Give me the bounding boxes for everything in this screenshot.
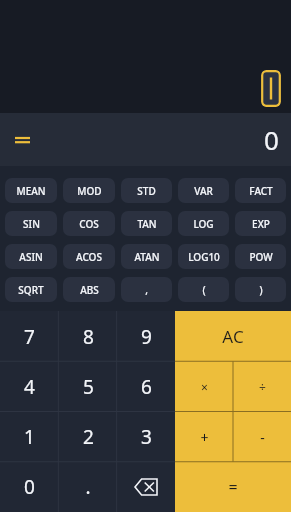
staticText: 8 bbox=[83, 324, 94, 350]
button[interactable]: . bbox=[59, 462, 117, 512]
button[interactable]: SQRT bbox=[5, 277, 57, 302]
staticText: LOG bbox=[193, 217, 214, 231]
staticText: MEAN bbox=[16, 184, 46, 198]
button[interactable]: LOG10 bbox=[178, 244, 229, 269]
staticText: × bbox=[201, 379, 208, 395]
staticText: EXP bbox=[252, 217, 270, 231]
button[interactable]: 4 bbox=[0, 362, 59, 412]
staticText: , bbox=[145, 283, 148, 297]
button[interactable]: TAN bbox=[121, 211, 172, 236]
staticText: 7 bbox=[24, 324, 35, 350]
button[interactable]: 5 bbox=[59, 362, 117, 412]
staticText: STD bbox=[137, 184, 156, 198]
staticText: . bbox=[85, 474, 91, 500]
button[interactable]: SIN bbox=[5, 211, 57, 236]
button[interactable]: FACT bbox=[235, 178, 286, 203]
staticText: MOD bbox=[77, 184, 102, 198]
staticText: ABS bbox=[80, 283, 99, 297]
button[interactable]: + bbox=[175, 412, 233, 462]
button[interactable]: 0 bbox=[0, 462, 59, 512]
staticText: 5 bbox=[83, 374, 94, 400]
staticText: ATAN bbox=[134, 250, 160, 264]
staticText: 1 bbox=[24, 424, 35, 450]
staticText: SIN bbox=[23, 217, 40, 231]
staticText: ASIN bbox=[19, 250, 43, 264]
staticText: 9 bbox=[141, 324, 152, 350]
staticText: 4 bbox=[24, 374, 35, 400]
staticText: + bbox=[200, 428, 209, 447]
staticText: ) bbox=[259, 283, 263, 297]
button[interactable]: ACOS bbox=[63, 244, 115, 269]
button[interactable]: 2 bbox=[59, 412, 117, 462]
button[interactable]: ( bbox=[178, 277, 229, 302]
button[interactable]: ) bbox=[235, 277, 286, 302]
button[interactable]: AC bbox=[175, 311, 291, 362]
staticText: POW bbox=[249, 250, 273, 264]
button[interactable]: POW bbox=[235, 244, 286, 269]
button[interactable]: 3 bbox=[117, 412, 175, 462]
staticText: 2 bbox=[83, 424, 94, 450]
button[interactable]: Expression input bbox=[261, 70, 281, 107]
button[interactable]: - bbox=[233, 412, 291, 462]
staticText: 3 bbox=[141, 424, 152, 450]
button[interactable]: 9 bbox=[117, 311, 175, 362]
staticText: 0 bbox=[264, 122, 279, 157]
staticText: ÷ bbox=[259, 379, 266, 395]
button[interactable]: , bbox=[121, 277, 172, 302]
button[interactable]: MEAN bbox=[5, 178, 57, 203]
staticText: ( bbox=[202, 283, 206, 297]
button[interactable]: Backspace bbox=[117, 462, 175, 512]
staticText: = bbox=[228, 476, 238, 498]
staticText: 6 bbox=[141, 374, 152, 400]
staticText: AC bbox=[222, 325, 244, 348]
button[interactable]: VAR bbox=[178, 178, 229, 203]
staticText: ACOS bbox=[76, 250, 102, 264]
button[interactable]: 7 bbox=[0, 311, 59, 362]
button[interactable]: Equals bbox=[10, 128, 34, 152]
button[interactable]: ÷ bbox=[233, 362, 291, 412]
staticText: FACT bbox=[249, 184, 273, 198]
button[interactable]: ABS bbox=[63, 277, 115, 302]
button[interactable]: LOG bbox=[178, 211, 229, 236]
staticText: VAR bbox=[194, 184, 213, 198]
button[interactable]: STD bbox=[121, 178, 172, 203]
button[interactable]: 1 bbox=[0, 412, 59, 462]
button[interactable]: × bbox=[175, 362, 233, 412]
button[interactable]: ATAN bbox=[121, 244, 172, 269]
button[interactable]: 8 bbox=[59, 311, 117, 362]
staticText: - bbox=[260, 428, 265, 447]
button[interactable]: MOD bbox=[63, 178, 115, 203]
button[interactable]: EXP bbox=[235, 211, 286, 236]
staticText: LOG10 bbox=[188, 250, 220, 264]
button[interactable]: 6 bbox=[117, 362, 175, 412]
button[interactable]: COS bbox=[63, 211, 115, 236]
staticText: TAN bbox=[137, 217, 157, 231]
staticText: 0 bbox=[24, 474, 35, 500]
staticText: SQRT bbox=[18, 283, 44, 297]
button[interactable]: ASIN bbox=[5, 244, 57, 269]
staticText: COS bbox=[79, 217, 99, 231]
button[interactable]: = bbox=[175, 462, 291, 512]
